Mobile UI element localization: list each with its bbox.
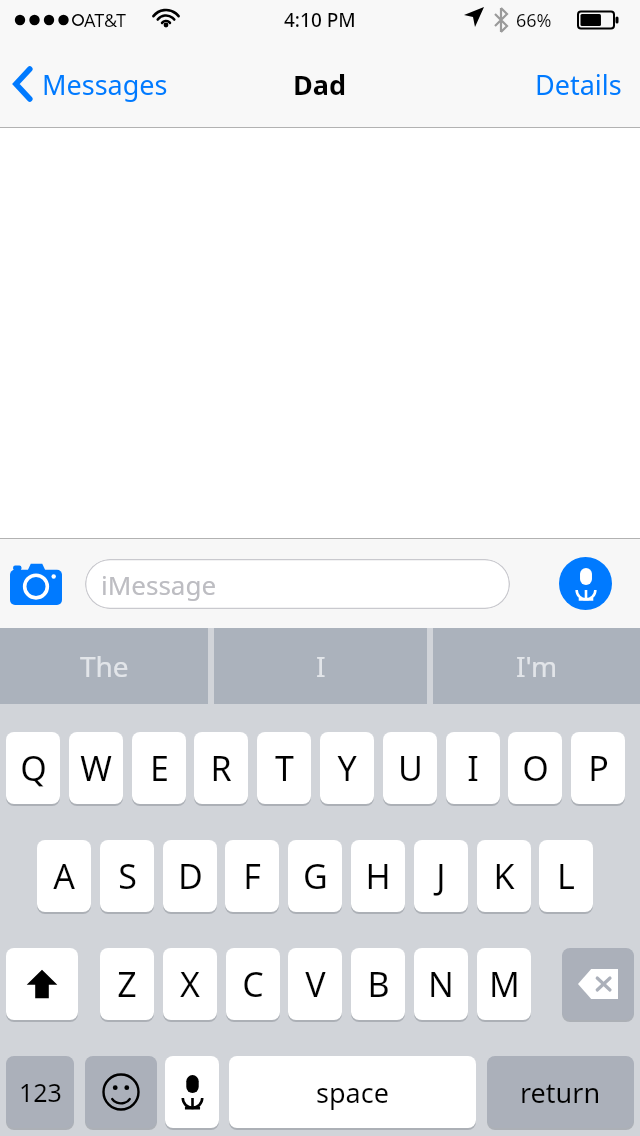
button[interactable]: Shift [6,948,78,1020]
button[interactable]: Backspace [562,948,634,1020]
button[interactable]: 123 [6,1056,74,1128]
staticText: 123 [19,1075,62,1109]
staticText: space [316,1074,389,1111]
staticText: U [398,745,423,791]
staticText: Z [117,961,137,1007]
button[interactable]: F [225,840,279,912]
button[interactable]: Messages [0,56,180,112]
staticText: I [467,745,479,791]
staticText: E [150,745,169,791]
staticText: I'm [516,647,558,685]
button[interactable]: Dictate [165,1056,219,1128]
staticText: X [180,961,200,1007]
button[interactable]: K [477,840,531,912]
staticText: A [53,853,75,899]
staticText: W [80,745,112,791]
button[interactable]: V [288,948,342,1020]
staticText: return [520,1074,601,1111]
staticText: D [178,853,203,899]
staticText: N [428,961,454,1007]
staticText: P [588,745,609,791]
staticText: 4:10 PM [284,7,356,33]
button[interactable]: B [351,948,405,1020]
button[interactable]: N [414,948,468,1020]
staticText: M [489,961,520,1007]
staticText: H [365,853,391,899]
staticText: iMessage [101,567,217,602]
staticText: G [303,853,328,899]
staticText: V [305,961,326,1007]
staticText: B [367,961,390,1007]
button[interactable]: Details [517,56,640,113]
button[interactable]: I'm [433,628,640,704]
staticText: I [316,647,326,685]
button[interactable]: G [288,840,342,912]
button[interactable]: J [414,840,468,912]
button[interactable]: L [539,840,593,912]
button[interactable]: Q [6,732,60,804]
staticText: T [275,745,294,791]
button[interactable]: space [229,1056,476,1128]
staticText: The [80,647,129,685]
button[interactable]: C [226,948,280,1020]
staticText: Details [535,66,622,103]
staticText: F [243,853,261,899]
button[interactable]: E [132,732,186,804]
button[interactable]: return [487,1056,634,1128]
staticText: L [557,853,575,899]
staticText: Dad [293,66,347,103]
button[interactable]: Dictate [559,557,612,610]
button[interactable]: W [69,732,123,804]
button[interactable]: S [100,840,154,912]
button[interactable]: A [37,840,91,912]
staticText: 66% [516,8,552,33]
button[interactable]: Y [320,732,374,804]
staticText: Y [337,745,357,791]
button[interactable]: The [0,628,208,704]
staticText: O [522,745,549,791]
staticText: J [436,853,446,899]
staticText: AT&T [84,8,126,33]
button[interactable]: T [257,732,311,804]
staticText: K [493,853,515,899]
button[interactable]: R [194,732,248,804]
button[interactable]: I [446,732,500,804]
button[interactable]: Z [100,948,154,1020]
staticText: S [118,853,137,899]
staticText: C [242,961,264,1007]
button[interactable]: X [163,948,217,1020]
button[interactable]: H [351,840,405,912]
button[interactable]: D [163,840,217,912]
button[interactable]: O [508,732,562,804]
staticText: Messages [42,66,168,103]
button[interactable]: U [383,732,437,804]
button[interactable]: P [571,732,625,804]
button[interactable]: Camera [6,554,66,614]
button[interactable]: Emoji [85,1056,157,1128]
staticText: Q [20,745,47,791]
button[interactable]: M [477,948,531,1020]
button[interactable]: iMessage [85,559,510,609]
staticText: R [210,745,232,791]
button[interactable]: I [214,628,427,704]
